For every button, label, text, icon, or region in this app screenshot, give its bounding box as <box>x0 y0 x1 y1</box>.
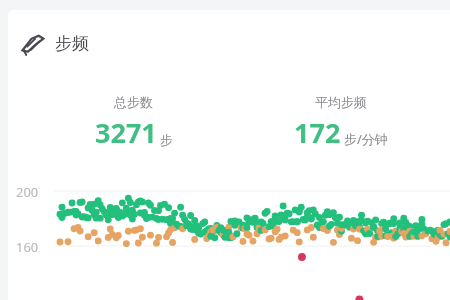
staticText: 步 <box>160 132 173 148</box>
staticText: 步/分钟 <box>344 130 388 148</box>
staticText: 172 <box>294 114 341 151</box>
staticText: 总步数 <box>114 94 153 110</box>
staticText: 平均步频 <box>315 94 367 110</box>
staticText: 3271 <box>95 114 157 151</box>
button[interactable]: 平均步频 <box>237 94 444 151</box>
button[interactable]: 200 <box>8 175 450 300</box>
button[interactable]: 总步数 <box>30 94 237 151</box>
staticText: 200 <box>16 183 39 201</box>
staticText: 步频 <box>55 33 89 54</box>
staticText: 160 <box>16 238 39 256</box>
other: Step cadence <box>20 30 46 56</box>
button[interactable]: Step cadence <box>18 28 91 58</box>
